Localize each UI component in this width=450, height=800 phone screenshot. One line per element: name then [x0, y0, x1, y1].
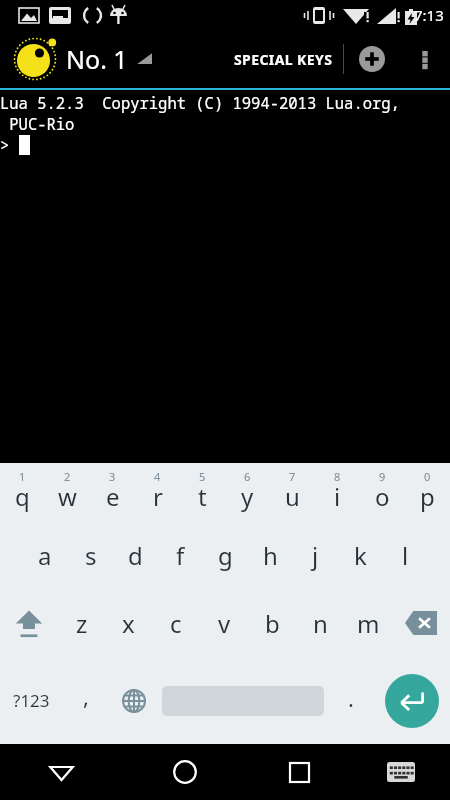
- staticText: 7: [289, 469, 296, 484]
- button[interactable]: x: [105, 589, 152, 657]
- staticText: 9: [379, 469, 386, 484]
- button[interactable]: 2: [45, 463, 90, 521]
- staticText: x: [122, 607, 135, 640]
- staticText: g: [218, 539, 233, 572]
- button[interactable]: Change language: [110, 657, 158, 744]
- button[interactable]: Lua 5.2.3 Copyright (C) 1994-2013 Lua.or…: [0, 90, 450, 463]
- staticText: 0: [424, 469, 431, 484]
- staticText: p: [420, 480, 435, 513]
- staticText: 4: [154, 469, 161, 484]
- staticText: d: [128, 539, 143, 572]
- button[interactable]: l: [383, 521, 428, 589]
- staticText: v: [218, 607, 231, 640]
- staticText: h: [263, 539, 278, 572]
- staticText: w: [58, 480, 77, 513]
- button[interactable]: n: [296, 589, 344, 657]
- button[interactable]: Shift: [0, 589, 58, 657]
- staticText: ?123: [13, 689, 50, 712]
- staticText: PUC-Rio: [0, 113, 75, 134]
- button[interactable]: z: [58, 589, 105, 657]
- button[interactable]: d: [113, 521, 158, 589]
- staticText: 7:13: [414, 5, 444, 25]
- button[interactable]: 8: [315, 463, 360, 521]
- staticText: 1: [19, 469, 26, 484]
- staticText: >: [0, 134, 19, 155]
- button[interactable]: 5: [180, 463, 225, 521]
- staticText: l: [402, 539, 409, 572]
- button[interactable]: k: [338, 521, 383, 589]
- button[interactable]: More options: [400, 34, 450, 84]
- button[interactable]: Backspace: [392, 589, 450, 657]
- button[interactable]: Recents: [246, 744, 352, 800]
- button[interactable]: j: [293, 521, 338, 589]
- button[interactable]: ,: [62, 657, 110, 744]
- staticText: 6: [244, 469, 251, 484]
- button[interactable]: .: [328, 657, 374, 744]
- button[interactable]: Switch keyboard: [352, 744, 450, 800]
- button[interactable]: Add: [344, 31, 400, 87]
- staticText: r: [153, 480, 163, 513]
- staticText: k: [354, 539, 367, 572]
- staticText: m: [357, 607, 380, 640]
- staticText: n: [313, 607, 328, 640]
- button[interactable]: ?123: [0, 657, 62, 744]
- staticText: y: [241, 480, 254, 513]
- button[interactable]: h: [248, 521, 293, 589]
- staticText: 3: [109, 469, 116, 484]
- button[interactable]: 7: [270, 463, 315, 521]
- staticText: t: [198, 480, 207, 513]
- staticText: s: [85, 539, 97, 572]
- button[interactable]: a: [22, 521, 68, 589]
- staticText: c: [170, 607, 182, 640]
- staticText: No. 1: [66, 42, 128, 76]
- staticText: .: [348, 683, 354, 713]
- button[interactable]: 1: [0, 463, 45, 521]
- button[interactable]: SPECIAL KEYS: [224, 36, 343, 83]
- button[interactable]: Enter: [374, 657, 450, 744]
- button[interactable]: f: [158, 521, 203, 589]
- staticText: z: [76, 607, 88, 640]
- button[interactable]: v: [200, 589, 248, 657]
- staticText: ,: [83, 681, 89, 711]
- staticText: i: [334, 480, 341, 513]
- button[interactable]: c: [152, 589, 200, 657]
- staticText: Lua 5.2.3 Copyright (C) 1994-2013 Lua.or…: [0, 92, 400, 113]
- staticText: SPECIAL KEYS: [234, 50, 333, 69]
- button[interactable]: 9: [360, 463, 405, 521]
- button[interactable]: 0: [405, 463, 450, 521]
- staticText: a: [38, 539, 52, 572]
- staticText: o: [375, 480, 390, 513]
- staticText: q: [15, 480, 30, 513]
- button[interactable]: b: [248, 589, 296, 657]
- button[interactable]: m: [344, 589, 392, 657]
- button[interactable]: s: [68, 521, 113, 589]
- button[interactable]: 6: [225, 463, 270, 521]
- button[interactable]: Back: [0, 744, 123, 800]
- staticText: 2: [64, 469, 71, 484]
- staticText: e: [106, 480, 120, 513]
- button[interactable]: Lua script No. 1: [0, 36, 156, 82]
- staticText: f: [176, 539, 185, 572]
- button[interactable]: 3: [90, 463, 135, 521]
- staticText: u: [285, 480, 300, 513]
- button[interactable]: Home: [123, 744, 246, 800]
- staticText: 8: [334, 469, 341, 484]
- button[interactable]: 4: [135, 463, 180, 521]
- button[interactable]: g: [203, 521, 248, 589]
- staticText: 5: [199, 469, 206, 484]
- staticText: j: [312, 539, 319, 572]
- staticText: b: [265, 607, 280, 640]
